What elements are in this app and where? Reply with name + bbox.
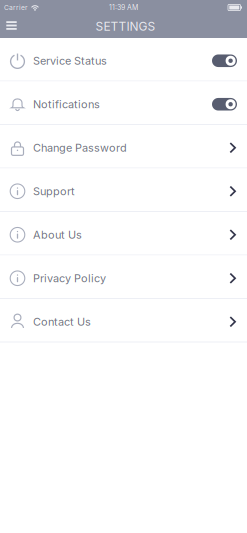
staticText: Change Password <box>33 141 127 154</box>
button[interactable]: Notifications <box>0 81 247 125</box>
button[interactable]: Privacy Policy <box>0 255 247 299</box>
staticText: Carrier <box>4 3 28 12</box>
staticText: Contact Us <box>33 315 91 328</box>
button[interactable]: Contact Us <box>0 299 247 342</box>
button[interactable]: Service Status <box>0 38 247 81</box>
staticText: 11:39 AM <box>109 3 138 12</box>
staticText: Notifications <box>33 98 100 111</box>
staticText: Support <box>33 185 75 198</box>
staticText: About Us <box>33 228 82 241</box>
button[interactable]: About Us <box>0 212 247 255</box>
staticText: SETTINGS <box>95 19 155 34</box>
button[interactable]: Support <box>0 168 247 212</box>
staticText: Privacy Policy <box>33 272 106 285</box>
button[interactable]: Change Password <box>0 125 247 168</box>
button[interactable]: Menu <box>0 15 23 38</box>
staticText: Service Status <box>33 54 107 67</box>
